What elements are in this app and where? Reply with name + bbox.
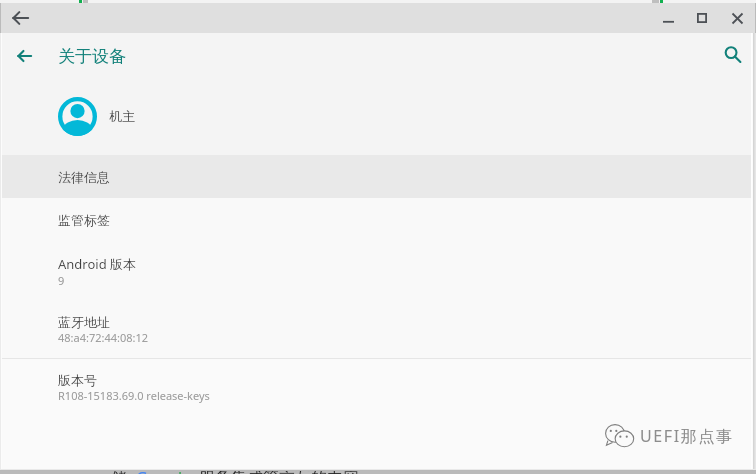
staticText: 48:a4:72:44:08:12 (58, 330, 149, 345)
staticText: 机主 (109, 108, 135, 124)
staticText: o (158, 467, 168, 474)
staticText: 服务集成管交互的内容 (199, 468, 359, 474)
button[interactable]: Close (719, 3, 755, 33)
staticText: 9 (58, 273, 65, 288)
staticText: o (148, 467, 158, 474)
button[interactable]: Back (1, 3, 39, 33)
staticText: 蓝牙地址 (58, 314, 110, 330)
button[interactable]: Navigate up (2, 33, 48, 77)
button[interactable]: 机主 (2, 77, 751, 155)
staticText: 储 (111, 468, 127, 474)
button[interactable]: Android 版本 (2, 242, 751, 300)
staticText: Android 版本 (58, 255, 137, 273)
staticText: 监管标签 (58, 212, 110, 228)
button[interactable]: 版本号 (2, 359, 751, 415)
button[interactable]: 蓝牙地址 (2, 300, 751, 358)
staticText: G (136, 467, 148, 474)
staticText: 关于设备 (58, 46, 126, 67)
button[interactable]: 监管标签 (2, 198, 751, 242)
staticText: R108-15183.69.0 release-keys (58, 388, 210, 403)
button[interactable]: 法律信息 (2, 155, 751, 198)
staticText: 版本号 (58, 372, 97, 388)
staticText: 法律信息 (58, 169, 110, 185)
staticText: g (168, 467, 178, 474)
button[interactable]: Minimize (651, 3, 685, 33)
button[interactable]: Search (703, 33, 751, 77)
staticText: l (178, 467, 183, 474)
staticText: e (183, 467, 193, 474)
button[interactable]: Maximize (685, 3, 719, 33)
staticText: UEFI那点事 (640, 425, 734, 447)
